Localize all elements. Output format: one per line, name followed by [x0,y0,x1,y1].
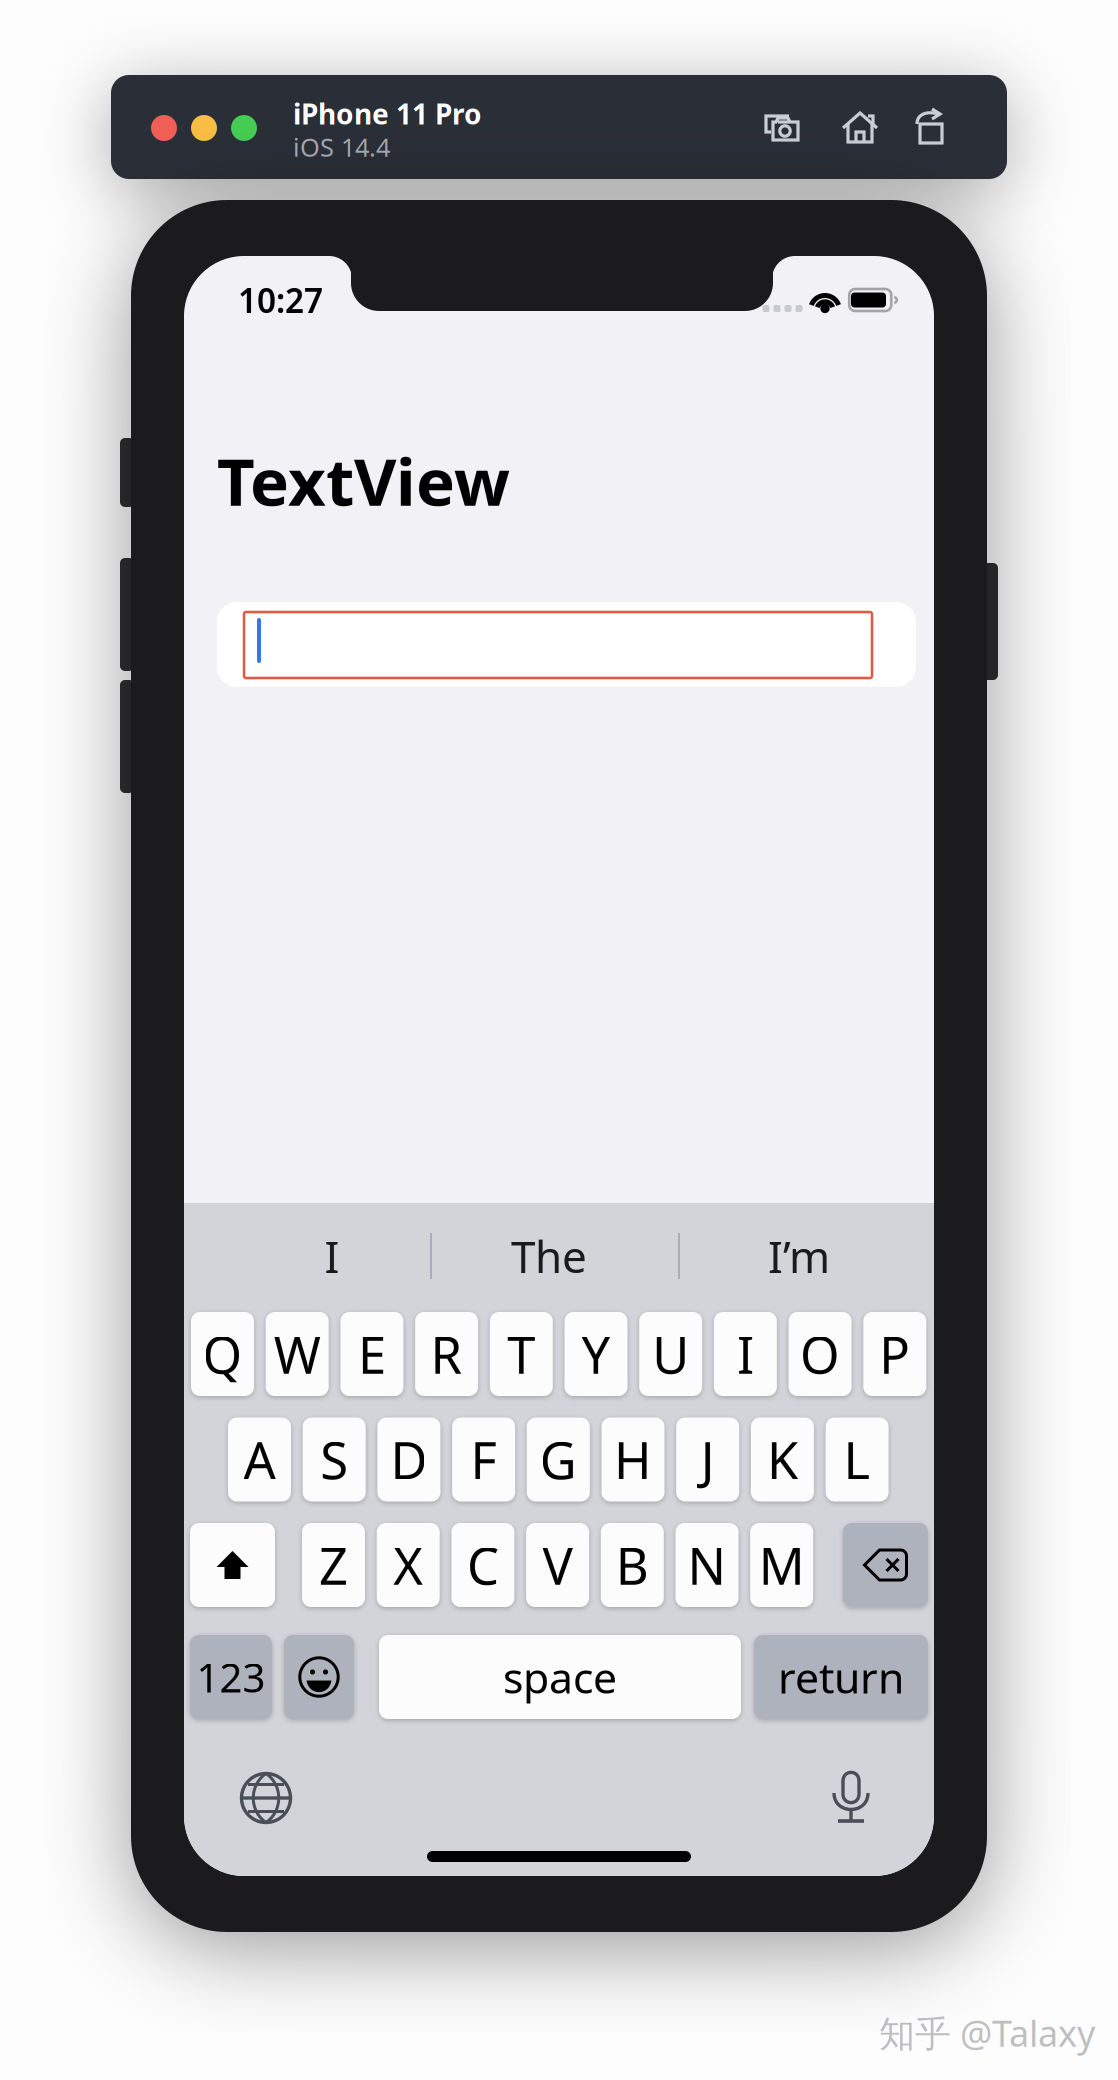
button[interactable]: C [451,1523,514,1607]
staticText: 10:27 [238,278,323,322]
button[interactable]: L [826,1417,889,1501]
staticText: P [879,1320,910,1388]
button[interactable]: Shift [190,1523,275,1607]
staticText: I’m [768,1227,830,1285]
button[interactable]: Dictation [830,1768,872,1826]
button[interactable]: Switch keyboard [240,1771,292,1825]
staticText: K [767,1426,798,1493]
button[interactable]: I [242,1225,422,1287]
button[interactable]: G [527,1417,590,1501]
staticText: O [800,1320,840,1388]
staticText: Q [202,1320,242,1388]
button[interactable]: Minimize [191,115,217,141]
staticText: C [467,1531,499,1599]
staticText: T [507,1320,535,1388]
staticText: V [543,1531,573,1599]
staticText: L [844,1426,871,1493]
staticText: Y [581,1320,610,1388]
staticText: 知乎 @Talaxy [879,2009,1095,2057]
button[interactable]: X [377,1523,440,1607]
staticText: A [243,1426,275,1493]
staticText: iOS 14.4 [293,130,390,164]
button[interactable]: Rotate [914,107,948,147]
button[interactable]: U [639,1312,702,1396]
button[interactable]: F [452,1417,515,1501]
button[interactable]: R [415,1312,478,1396]
button[interactable]: The [459,1225,639,1287]
button[interactable]: 123 [190,1635,272,1719]
staticText: W [274,1320,321,1388]
button[interactable]: I [714,1312,777,1396]
staticText: M [759,1531,805,1599]
staticText: J [701,1426,715,1493]
staticText: space [503,1649,617,1705]
button[interactable]: return [754,1635,928,1719]
button[interactable]: Delete [843,1523,928,1607]
staticText: F [471,1426,497,1493]
staticText: D [390,1426,427,1493]
staticText: return [778,1649,904,1705]
button[interactable]: Q [191,1312,254,1396]
button[interactable]: space [379,1635,741,1719]
staticText: TextView [217,437,510,524]
staticText: I [737,1320,754,1388]
staticText: N [687,1531,726,1599]
button[interactable]: Z [302,1523,365,1607]
staticText: B [616,1531,649,1599]
staticText: I [324,1227,339,1285]
button[interactable]: B [601,1523,664,1607]
button[interactable]: Screenshot [762,108,804,148]
button[interactable]: T [490,1312,553,1396]
button[interactable]: Zoom [231,115,257,141]
button[interactable]: M [750,1523,813,1607]
button[interactable]: A [228,1417,291,1501]
button[interactable]: Close [151,115,177,141]
button[interactable]: I’m [709,1225,889,1287]
button[interactable]: Home [841,108,881,148]
staticText: Z [319,1531,348,1599]
button[interactable]: V [526,1523,589,1607]
staticText: X [393,1531,423,1599]
button[interactable]: S [303,1417,366,1501]
staticText: R [431,1320,463,1388]
button[interactable]: W [266,1312,329,1396]
staticText: H [614,1426,652,1493]
button[interactable]: D [377,1417,440,1501]
staticText: 123 [196,1650,265,1703]
button[interactable]: P [863,1312,926,1396]
staticText: iPhone 11 Pro [293,95,482,132]
button[interactable]: N [675,1523,738,1607]
staticText: The [511,1227,587,1285]
staticText: S [320,1426,348,1493]
button[interactable]: Emoji [284,1635,354,1719]
staticText: U [652,1320,689,1388]
button[interactable]: O [789,1312,852,1396]
button[interactable]: E [340,1312,403,1396]
button[interactable]: K [751,1417,814,1501]
button[interactable]: Y [564,1312,627,1396]
staticText: G [540,1426,577,1493]
staticText: E [358,1320,386,1388]
button[interactable]: H [601,1417,664,1501]
button[interactable]: J [676,1417,739,1501]
